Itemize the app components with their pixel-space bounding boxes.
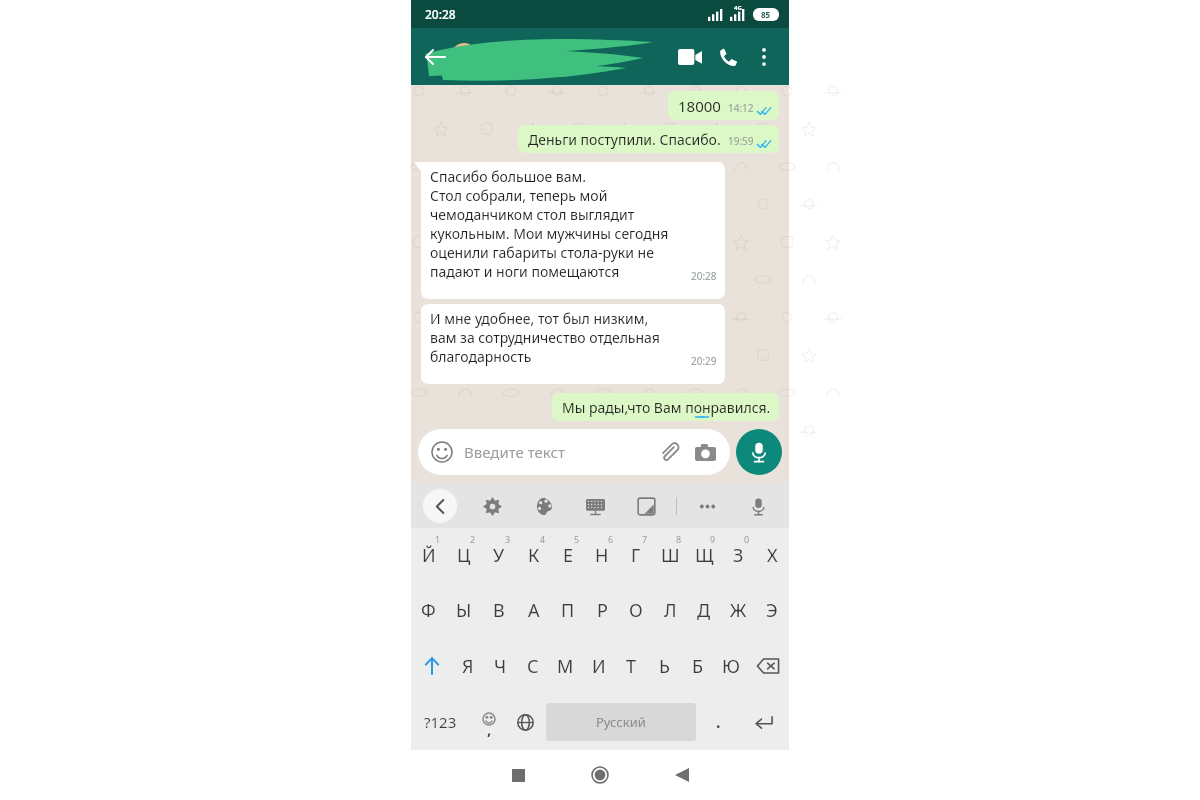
- button[interactable]: У: [481, 528, 516, 583]
- button[interactable]: И: [582, 638, 615, 694]
- button[interactable]: Video call: [671, 38, 709, 76]
- staticText: Я: [462, 654, 474, 679]
- staticText: Стол собрали, теперь мой: [430, 186, 608, 205]
- button[interactable]: Ю: [714, 638, 747, 694]
- button[interactable]: .: [698, 694, 738, 750]
- staticText: 1: [435, 533, 441, 545]
- staticText: 19:59: [728, 134, 754, 148]
- button[interactable]: Camera: [692, 439, 718, 465]
- staticText: Д: [697, 598, 711, 623]
- button[interactable]: Р: [585, 583, 619, 638]
- staticText: 20:28: [425, 6, 456, 22]
- button[interactable]: Русский: [546, 703, 696, 741]
- button[interactable]: ?123: [411, 694, 470, 750]
- staticText: Ы: [456, 598, 472, 623]
- button[interactable]: Recent apps: [496, 753, 540, 797]
- button[interactable]: Й: [411, 528, 446, 583]
- staticText: 20:28: [691, 269, 717, 283]
- button[interactable]: Voice message: [736, 429, 782, 475]
- button[interactable]: О: [619, 583, 653, 638]
- button[interactable]: Д: [687, 583, 721, 638]
- staticText: И мне удобнее, тот был низким,: [430, 309, 649, 328]
- button[interactable]: Settings: [477, 491, 507, 521]
- button[interactable]: А: [516, 583, 551, 638]
- staticText: кукольным. Мои мужчины сегодня: [430, 224, 669, 243]
- staticText: И: [592, 654, 606, 679]
- button[interactable]: Change language: [507, 694, 544, 750]
- staticText: Е: [563, 543, 574, 568]
- staticText: Мы рады,что Вам понравился.: [562, 398, 771, 417]
- button[interactable]: М: [549, 638, 582, 694]
- button[interactable]: Н: [585, 528, 619, 583]
- button[interactable]: Attach: [656, 439, 682, 465]
- button[interactable]: Л: [653, 583, 687, 638]
- staticText: М: [557, 654, 574, 679]
- button[interactable]: Я: [452, 638, 484, 694]
- button[interactable]: Emoji: [430, 440, 454, 464]
- button[interactable]: Call: [709, 38, 747, 76]
- staticText: 4G: [734, 4, 742, 12]
- staticText: 9: [710, 533, 716, 545]
- staticText: Щ: [695, 543, 714, 568]
- button[interactable]: К: [516, 528, 551, 583]
- staticText: Ю: [722, 654, 740, 679]
- button[interactable]: Ф: [411, 583, 446, 638]
- button[interactable]: Backspace: [747, 638, 789, 694]
- button[interactable]: 18000: [668, 91, 779, 120]
- staticText: благодарность: [430, 347, 532, 366]
- button[interactable]: Э: [755, 583, 789, 638]
- button[interactable]: Theme: [529, 491, 559, 521]
- button[interactable]: Ш: [653, 528, 687, 583]
- button[interactable]: Home: [578, 753, 622, 797]
- button[interactable]: Ы: [446, 583, 481, 638]
- staticText: Деньги поступили. Спасибо.: [528, 130, 721, 149]
- button[interactable]: Ч: [484, 638, 516, 694]
- staticText: Ф: [421, 598, 436, 623]
- button[interactable]: В: [481, 583, 516, 638]
- staticText: .: [716, 711, 721, 733]
- button[interactable]: Back: [423, 489, 457, 523]
- button[interactable]: Ж: [721, 583, 755, 638]
- button[interactable]: Emoji: [418, 429, 730, 475]
- button[interactable]: Ц: [446, 528, 481, 583]
- button[interactable]: Г: [619, 528, 653, 583]
- button[interactable]: П: [551, 583, 585, 638]
- staticText: вам за сотрудничество отдельная: [430, 328, 660, 347]
- button[interactable]: Resize: [631, 491, 661, 521]
- button[interactable]: Т: [615, 638, 648, 694]
- staticText: Русский: [596, 713, 646, 731]
- staticText: Ч: [494, 654, 507, 679]
- button[interactable]: Щ: [687, 528, 721, 583]
- button[interactable]: Back: [417, 39, 453, 75]
- staticText: Ш: [661, 543, 680, 568]
- button[interactable]: З: [721, 528, 755, 583]
- button[interactable]: Emoji: [470, 694, 507, 750]
- staticText: Ж: [730, 598, 747, 623]
- staticText: Л: [664, 598, 677, 623]
- button[interactable]: Enter: [738, 694, 789, 750]
- staticText: Т: [626, 654, 637, 679]
- staticText: К: [528, 543, 540, 568]
- staticText: У: [493, 543, 505, 568]
- button[interactable]: Мы рады,что Вам понравился.: [552, 393, 779, 421]
- staticText: 20:29: [691, 354, 717, 368]
- button[interactable]: Voice input: [743, 491, 773, 521]
- button[interactable]: Х: [755, 528, 789, 583]
- staticText: падают и ноги помещаются: [430, 262, 620, 281]
- button[interactable]: Б: [681, 638, 714, 694]
- button[interactable]: И мне удобнее, тот был низким,: [421, 304, 725, 384]
- staticText: 2: [470, 533, 476, 545]
- button[interactable]: Shift: [411, 638, 452, 694]
- staticText: Г: [631, 543, 641, 568]
- staticText: 8: [676, 533, 682, 545]
- button[interactable]: Back: [660, 753, 704, 797]
- button[interactable]: Ь: [648, 638, 681, 694]
- button[interactable]: Деньги поступили. Спасибо.: [518, 125, 779, 153]
- button[interactable]: Е: [551, 528, 585, 583]
- button[interactable]: Спасибо большое вам.: [421, 162, 725, 299]
- button[interactable]: С: [516, 638, 549, 694]
- button[interactable]: Keyboard layout: [580, 491, 610, 521]
- staticText: В: [493, 598, 505, 623]
- button[interactable]: More options: [747, 40, 781, 74]
- button[interactable]: More: [692, 491, 722, 521]
